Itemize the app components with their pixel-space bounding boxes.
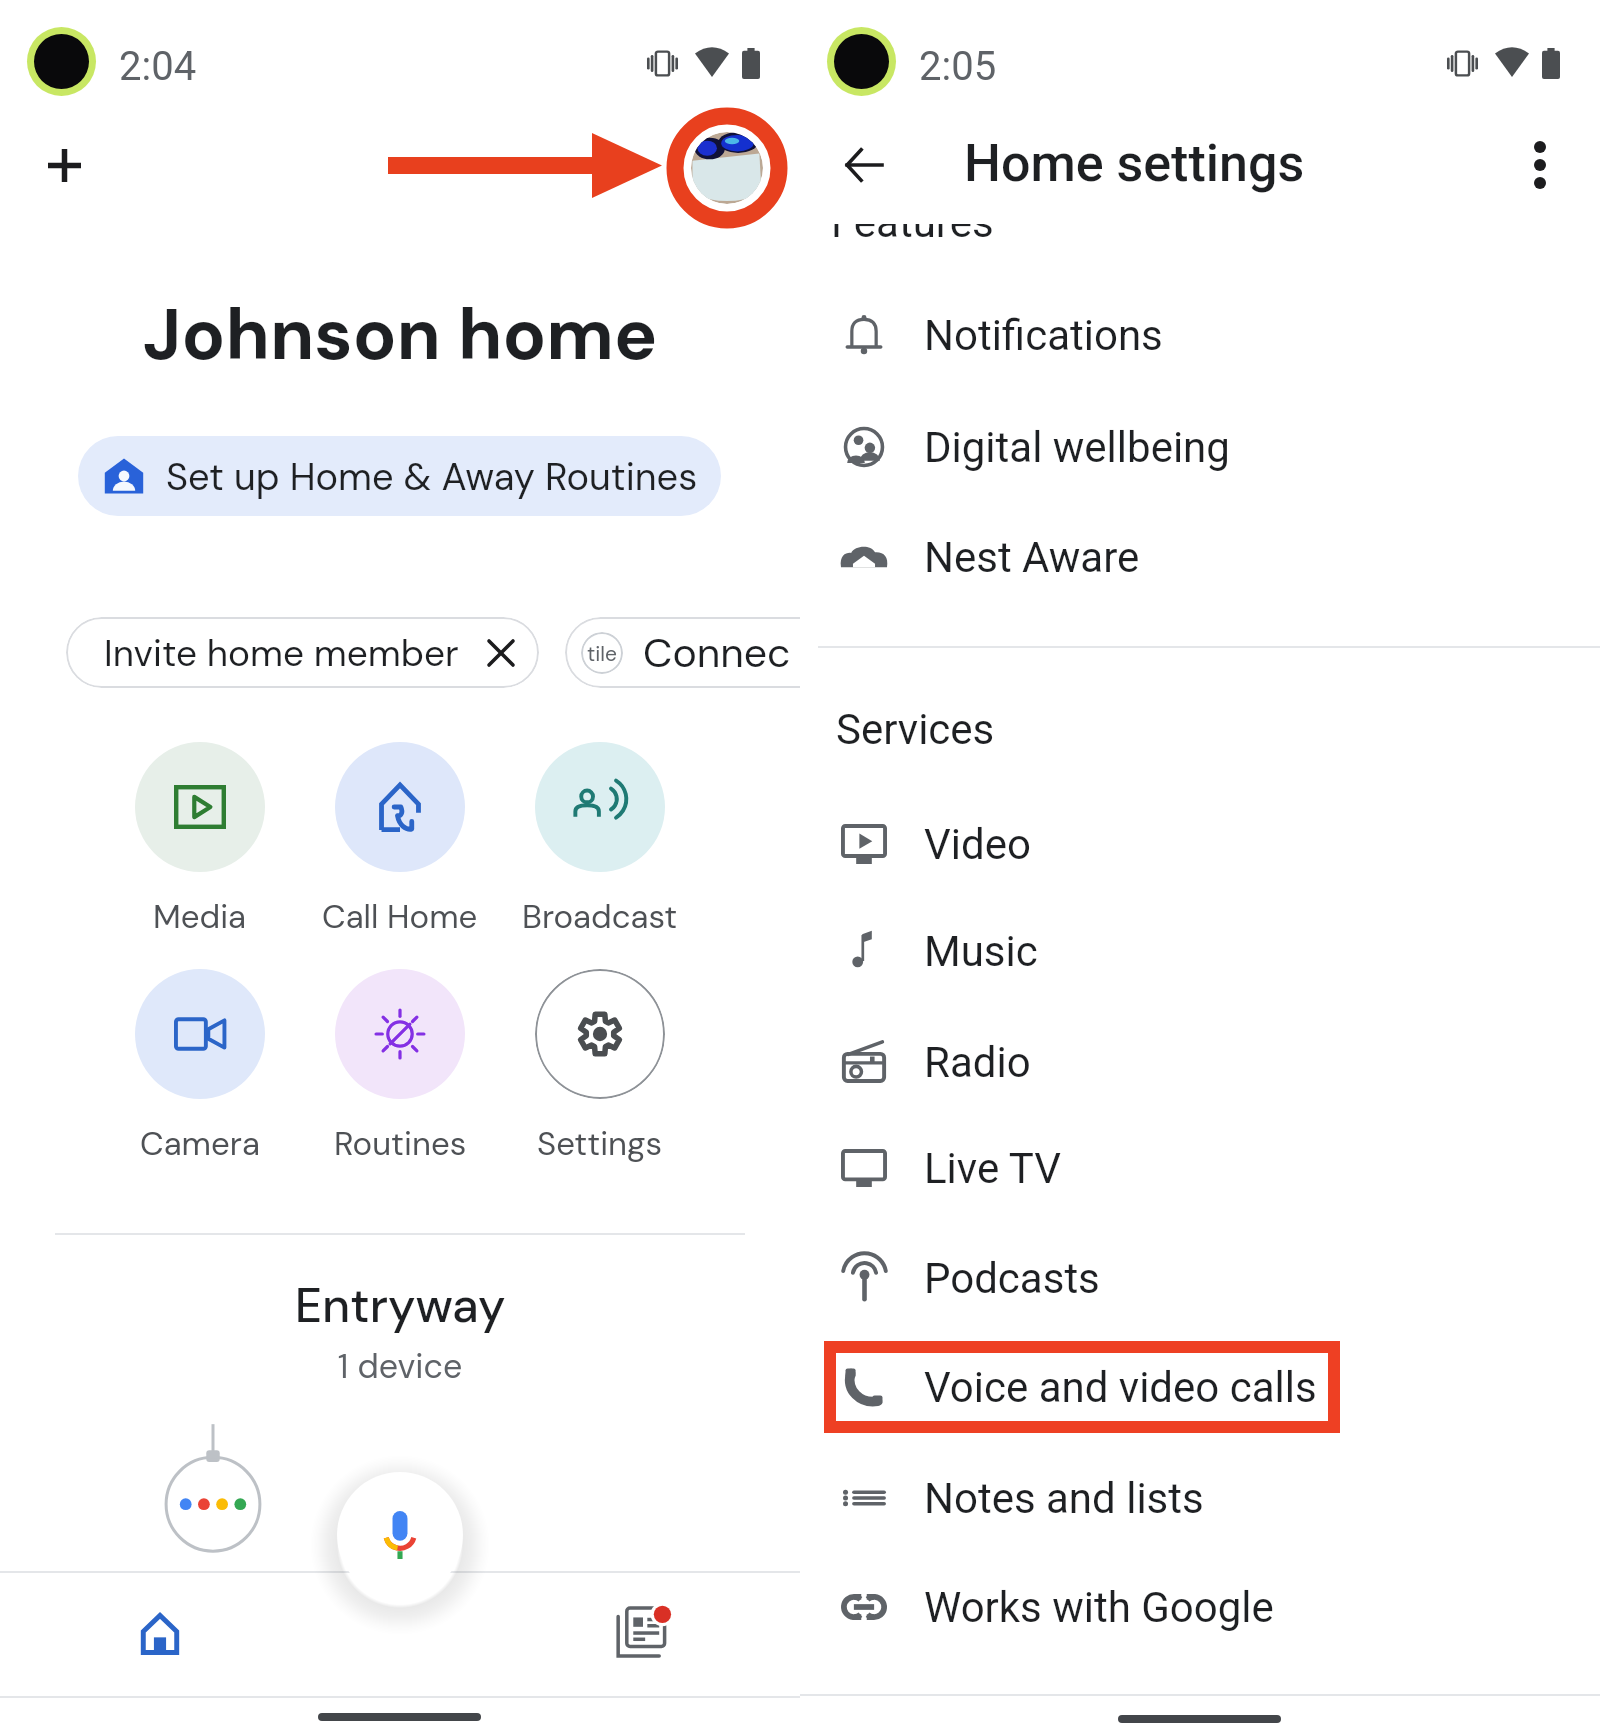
- button[interactable]: Invite home member: [66, 617, 539, 688]
- staticText: 2:04: [119, 43, 197, 90]
- button[interactable]: Media: [100, 742, 300, 938]
- staticText: Media: [153, 895, 247, 938]
- button[interactable]: Nest Aware: [800, 503, 1600, 611]
- staticText: Music: [924, 927, 1038, 976]
- button[interactable]: Video: [800, 790, 1600, 898]
- staticText: Set up Home & Away Routines: [166, 452, 698, 501]
- staticText: Camera: [140, 1122, 260, 1165]
- staticText: 2:05: [919, 43, 997, 90]
- button[interactable]: tile: [565, 617, 800, 688]
- button[interactable]: Call Home: [300, 742, 500, 938]
- staticText: Broadcast: [522, 895, 678, 938]
- button[interactable]: Back: [830, 131, 898, 199]
- staticText: Connec: [643, 626, 791, 679]
- button[interactable]: Set up Home & Away Routines: [78, 436, 721, 516]
- button[interactable]: Home: [128, 1602, 192, 1666]
- button[interactable]: Add device: [32, 133, 96, 197]
- staticText: Notifications: [924, 311, 1163, 360]
- staticText: Call Home: [322, 895, 478, 938]
- button[interactable]: [143, 1418, 283, 1572]
- button[interactable]: Works with Google: [800, 1553, 1600, 1661]
- staticText: Home settings: [964, 133, 1305, 194]
- staticText: Digital wellbeing: [924, 423, 1230, 472]
- button[interactable]: Settings: [500, 969, 700, 1165]
- button[interactable]: Feed: [611, 1600, 675, 1664]
- button[interactable]: Routines: [300, 969, 500, 1165]
- button[interactable]: Account: [691, 132, 763, 204]
- button[interactable]: Broadcast: [500, 742, 700, 938]
- staticText: Radio: [924, 1038, 1031, 1087]
- staticText: Features: [831, 198, 994, 247]
- staticText: Live TV: [924, 1144, 1061, 1193]
- staticText: Entryway: [0, 1274, 800, 1336]
- staticText: Nest Aware: [924, 533, 1140, 582]
- button[interactable]: Radio: [800, 1008, 1600, 1116]
- staticText: Voice and video calls: [924, 1363, 1317, 1412]
- button[interactable]: More options: [1506, 131, 1574, 199]
- staticText: tile: [587, 640, 617, 667]
- button[interactable]: Music: [800, 897, 1600, 1005]
- button[interactable]: Live TV: [800, 1114, 1600, 1222]
- button[interactable]: Notes and lists: [800, 1444, 1600, 1552]
- staticText: Services: [836, 705, 995, 754]
- staticText: Video: [924, 820, 1031, 869]
- button[interactable]: Google Assistant: [337, 1472, 463, 1598]
- staticText: Notes and lists: [924, 1474, 1204, 1523]
- button[interactable]: Notifications: [800, 281, 1600, 389]
- staticText: 1 device: [0, 1344, 800, 1388]
- staticText: Johnson home: [0, 288, 800, 382]
- staticText: Invite home member: [104, 629, 459, 677]
- staticText: Works with Google: [924, 1583, 1274, 1632]
- button[interactable]: Camera: [100, 969, 300, 1165]
- staticText: Routines: [334, 1122, 467, 1165]
- button[interactable]: Podcasts: [800, 1224, 1600, 1332]
- button[interactable]: Digital wellbeing: [800, 393, 1600, 501]
- button[interactable]: Voice and video calls: [800, 1333, 1600, 1441]
- staticText: Podcasts: [924, 1254, 1100, 1303]
- staticText: Settings: [537, 1122, 663, 1165]
